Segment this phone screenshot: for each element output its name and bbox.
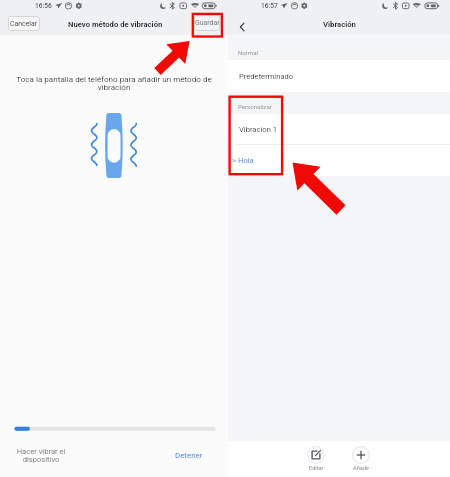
staticText: > bbox=[232, 156, 236, 165]
staticText: Toca la pantalla del teléfono para añadi… bbox=[0, 74, 228, 92]
staticText: Hola bbox=[238, 156, 254, 165]
staticText: Normal bbox=[238, 49, 259, 56]
button[interactable]: Back bbox=[233, 18, 251, 36]
staticText: Vibración bbox=[323, 20, 356, 29]
staticText: 16:57 bbox=[261, 2, 278, 10]
staticText: Personalizar bbox=[238, 103, 272, 110]
staticText: 16:56 bbox=[35, 2, 52, 10]
staticText: Hacer vibrar el dispositivo bbox=[10, 447, 72, 464]
button[interactable]: > bbox=[228, 145, 450, 176]
staticText: Predeterminado bbox=[239, 72, 294, 81]
staticText: Detener bbox=[175, 451, 203, 460]
staticText: Editar bbox=[309, 465, 324, 472]
button[interactable]: Predeterminado bbox=[228, 60, 450, 92]
staticText: Guardar bbox=[195, 19, 220, 27]
button[interactable]: Vibracion 1 bbox=[228, 114, 450, 145]
button[interactable]: Editar bbox=[303, 446, 329, 472]
staticText: Vibracion 1 bbox=[239, 125, 277, 134]
button[interactable]: Añadir bbox=[348, 446, 374, 472]
button[interactable]: Detener bbox=[169, 448, 209, 463]
staticText: Cancelar bbox=[10, 20, 38, 28]
button[interactable]: Cancelar bbox=[8, 16, 40, 31]
staticText: Añadir bbox=[353, 465, 370, 472]
button[interactable]: Guardar bbox=[194, 15, 220, 31]
staticText: Nuevo método de vibración bbox=[68, 20, 163, 29]
